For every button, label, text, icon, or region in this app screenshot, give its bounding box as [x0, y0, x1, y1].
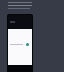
button[interactable] [8, 2, 32, 11]
